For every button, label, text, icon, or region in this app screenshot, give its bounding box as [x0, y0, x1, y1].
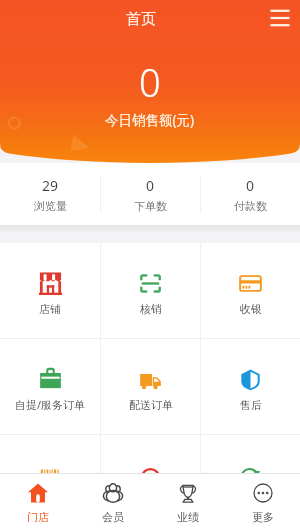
button[interactable]: 转单: [201, 435, 300, 530]
staticText: 会员: [102, 510, 124, 524]
button[interactable]: 收银: [201, 243, 300, 338]
button[interactable]: 29: [0, 163, 100, 225]
staticText: 首页: [126, 10, 156, 29]
button[interactable]: Menu: [268, 6, 292, 30]
staticText: 门店: [27, 510, 49, 524]
staticText: 配送订单: [129, 398, 173, 412]
staticText: 自提/服务订单: [15, 397, 86, 412]
staticText: 0: [139, 56, 161, 108]
staticText: 29: [42, 176, 59, 195]
staticText: 商品码: [34, 494, 67, 508]
staticText: 付款数: [234, 199, 267, 213]
button[interactable]: 门店: [0, 474, 75, 532]
button[interactable]: 会员: [75, 474, 150, 532]
staticText: 浏览量: [34, 199, 67, 213]
button[interactable]: 退款: [101, 435, 200, 530]
staticText: 0: [146, 176, 155, 195]
staticText: 下单数: [134, 199, 167, 213]
staticText: 转单: [240, 494, 262, 508]
staticText: 今日销售额(元): [105, 111, 195, 129]
button[interactable]: 0: [101, 163, 200, 225]
button[interactable]: 更多: [225, 474, 300, 532]
staticText: 收银: [240, 302, 262, 316]
button[interactable]: 售后: [201, 339, 300, 434]
button[interactable]: 业绩: [150, 474, 225, 532]
staticText: 店铺: [39, 302, 61, 316]
button[interactable]: 商品码: [0, 435, 100, 530]
staticText: 核销: [140, 302, 162, 316]
staticText: 更多: [252, 510, 274, 524]
button[interactable]: 店铺: [0, 243, 100, 338]
staticText: 0: [246, 176, 255, 195]
button[interactable]: 自提/服务订单: [0, 339, 100, 434]
staticText: 业绩: [177, 510, 199, 524]
staticText: 售后: [240, 398, 262, 412]
button[interactable]: 0: [201, 163, 300, 225]
button[interactable]: 配送订单: [101, 339, 200, 434]
button[interactable]: 核销: [101, 243, 200, 338]
